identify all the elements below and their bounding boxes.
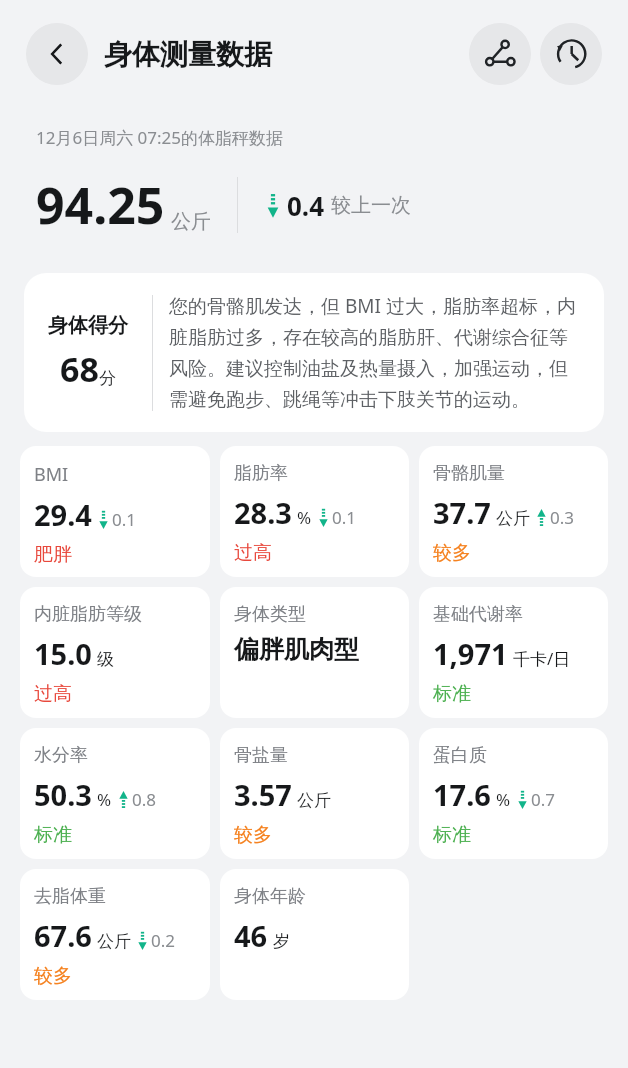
staticText: 身体测量数据 bbox=[104, 37, 272, 72]
staticText: 级 bbox=[97, 649, 114, 670]
button[interactable]: 身体类型 bbox=[220, 587, 409, 718]
staticText: 标准 bbox=[433, 682, 471, 706]
staticText: BMI bbox=[34, 462, 69, 487]
staticText: 公斤 bbox=[297, 790, 331, 811]
staticText: 偏胖肌肉型 bbox=[234, 634, 359, 665]
staticText: 内脏脂肪等级 bbox=[34, 603, 142, 626]
staticText: 基础代谢率 bbox=[433, 603, 523, 626]
staticText: 水分率 bbox=[34, 744, 88, 767]
staticText: 0.7 bbox=[531, 788, 556, 811]
staticText: 68 bbox=[60, 346, 99, 392]
staticText: 肥胖 bbox=[34, 543, 72, 567]
staticText: 去脂体重 bbox=[34, 885, 106, 908]
button[interactable]: 骨盐量 bbox=[220, 728, 409, 859]
staticText: 17.6 bbox=[433, 775, 491, 814]
staticText: 身体得分 bbox=[48, 313, 128, 338]
staticText: 0.1 bbox=[332, 506, 357, 529]
staticText: 12月6日周六 07:25的体脂秤数据 bbox=[36, 126, 284, 149]
staticText: 标准 bbox=[34, 823, 72, 847]
staticText: 分 bbox=[99, 368, 116, 389]
staticText: 67.6 bbox=[34, 916, 92, 955]
button[interactable]: BMI bbox=[20, 446, 210, 577]
button[interactable]: Share bbox=[469, 23, 531, 85]
staticText: 94.25 bbox=[36, 171, 165, 239]
button[interactable]: 蛋白质 bbox=[419, 728, 608, 859]
staticText: 千卡/日 bbox=[513, 647, 571, 670]
staticText: % bbox=[97, 788, 112, 811]
button[interactable]: History bbox=[540, 23, 602, 85]
button[interactable]: 基础代谢率 bbox=[419, 587, 608, 718]
staticText: 较多 bbox=[433, 541, 471, 565]
staticText: 1,971 bbox=[433, 634, 508, 673]
staticText: 岁 bbox=[273, 931, 290, 952]
staticText: 骨骼肌量 bbox=[433, 462, 505, 485]
button[interactable]: 水分率 bbox=[20, 728, 210, 859]
staticText: 0.4 bbox=[287, 188, 325, 223]
staticText: 标准 bbox=[433, 823, 471, 847]
button[interactable]: Back bbox=[26, 23, 88, 85]
staticText: 46 bbox=[234, 916, 268, 955]
staticText: 骨盐量 bbox=[234, 744, 288, 767]
staticText: 较多 bbox=[234, 823, 272, 847]
staticText: 较上一次 bbox=[331, 193, 411, 218]
staticText: 28.3 bbox=[234, 493, 292, 532]
button[interactable]: 脂肪率 bbox=[220, 446, 409, 577]
staticText: 公斤 bbox=[171, 209, 211, 234]
staticText: 公斤 bbox=[97, 931, 131, 952]
button[interactable]: 身体得分 bbox=[24, 273, 604, 432]
staticText: 50.3 bbox=[34, 775, 92, 814]
staticText: 过高 bbox=[234, 541, 272, 565]
staticText: 您的骨骼肌发达，但 BMI 过大，脂肪率超标，内脏脂肪过多，存在较高的脂肪肝、代… bbox=[169, 293, 586, 412]
staticText: 较多 bbox=[34, 964, 72, 988]
staticText: 15.0 bbox=[34, 634, 92, 673]
button[interactable]: 身体年龄 bbox=[220, 869, 409, 1000]
staticText: 蛋白质 bbox=[433, 744, 487, 767]
staticText: % bbox=[496, 788, 511, 811]
staticText: 29.4 bbox=[34, 495, 92, 534]
staticText: 过高 bbox=[34, 682, 72, 706]
staticText: 公斤 bbox=[496, 508, 530, 529]
staticText: % bbox=[297, 506, 312, 529]
staticText: 脂肪率 bbox=[234, 462, 288, 485]
staticText: 0.8 bbox=[132, 788, 157, 811]
staticText: 身体年龄 bbox=[234, 885, 306, 908]
staticText: 0.3 bbox=[550, 506, 575, 529]
staticText: 0.1 bbox=[112, 508, 137, 531]
staticText: 37.7 bbox=[433, 493, 491, 532]
staticText: 3.57 bbox=[234, 775, 292, 814]
button[interactable]: 骨骼肌量 bbox=[419, 446, 608, 577]
button[interactable]: 去脂体重 bbox=[20, 869, 210, 1000]
button[interactable]: 内脏脂肪等级 bbox=[20, 587, 210, 718]
staticText: 身体类型 bbox=[234, 603, 306, 626]
staticText: 0.2 bbox=[151, 929, 176, 952]
